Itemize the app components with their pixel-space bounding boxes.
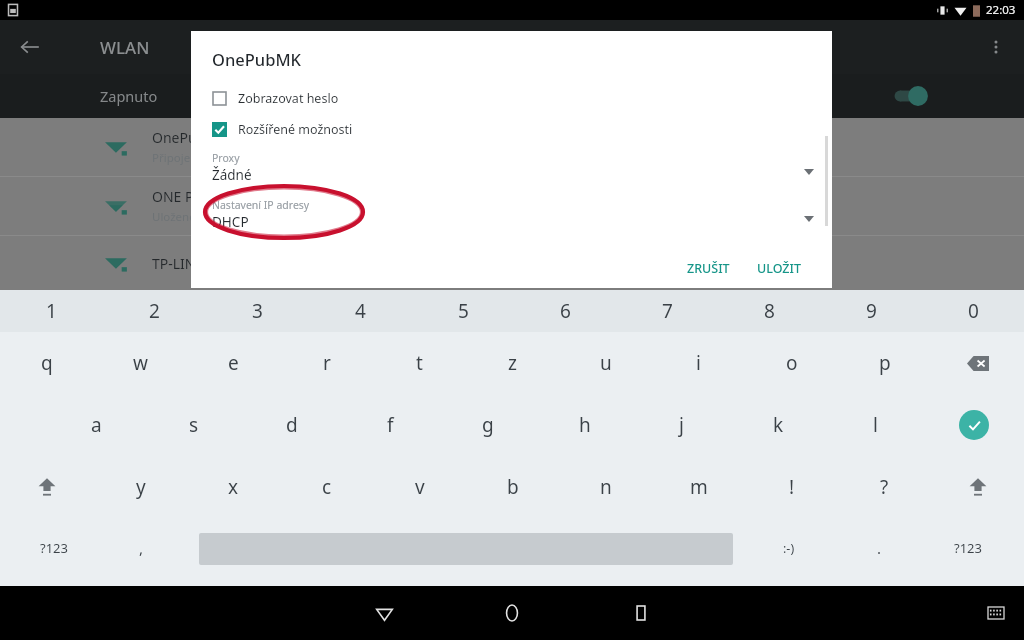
staticText: m bbox=[690, 474, 708, 500]
button[interactable]: b bbox=[466, 456, 559, 518]
staticText: b bbox=[507, 474, 519, 500]
button[interactable]: TP-LINK_D0C2 bbox=[0, 236, 1024, 290]
button[interactable]: i bbox=[652, 332, 745, 394]
staticText: . bbox=[877, 538, 882, 558]
button[interactable]: x bbox=[187, 456, 280, 518]
button[interactable]: 5 bbox=[412, 290, 514, 332]
staticText: l bbox=[873, 412, 878, 438]
button[interactable]: s bbox=[145, 394, 243, 456]
button[interactable]: l bbox=[827, 394, 924, 456]
staticText: 8 bbox=[764, 298, 775, 324]
button[interactable]: u bbox=[559, 332, 652, 394]
staticText: 4 bbox=[355, 298, 366, 324]
staticText: c bbox=[322, 474, 332, 500]
staticText: s bbox=[189, 412, 199, 438]
button[interactable]: r bbox=[280, 332, 373, 394]
button[interactable]: . bbox=[856, 523, 902, 573]
button[interactable]: 0 bbox=[922, 290, 1024, 332]
staticText: , bbox=[139, 538, 144, 558]
staticText: k bbox=[773, 412, 784, 438]
staticText: Rozšířené možnosti bbox=[238, 121, 353, 138]
staticText: u bbox=[600, 350, 612, 376]
staticText: Žádné bbox=[212, 166, 252, 184]
button[interactable]: 2 bbox=[103, 290, 206, 332]
button[interactable]: 1 bbox=[0, 290, 103, 332]
button[interactable]: e bbox=[187, 332, 280, 394]
button[interactable]: 7 bbox=[616, 290, 718, 332]
button[interactable]: ?123 bbox=[940, 523, 996, 573]
staticText: ? bbox=[880, 474, 889, 500]
button[interactable]: j bbox=[633, 394, 730, 456]
button[interactable]: ULOŽIT bbox=[748, 254, 810, 283]
staticText: r bbox=[323, 350, 331, 376]
staticText: ULOŽIT bbox=[757, 260, 801, 277]
button[interactable]: Proxy bbox=[191, 147, 832, 187]
staticText: d bbox=[286, 412, 298, 438]
staticText: :-) bbox=[783, 540, 795, 557]
button[interactable]: Shift bbox=[0, 456, 94, 518]
button[interactable]: z bbox=[466, 332, 559, 394]
button[interactable]: w bbox=[94, 332, 187, 394]
staticText: t bbox=[416, 350, 423, 376]
button[interactable]: h bbox=[536, 394, 633, 456]
button[interactable]: n bbox=[559, 456, 652, 518]
button[interactable]: OnePubMK bbox=[0, 118, 1024, 176]
staticText: x bbox=[228, 474, 239, 500]
button[interactable]: ! bbox=[745, 456, 838, 518]
button[interactable]: ? bbox=[838, 456, 931, 518]
button[interactable]: ONE PUBLIC bbox=[0, 177, 1024, 235]
button[interactable]: a bbox=[47, 394, 145, 456]
button[interactable]: ZRUŠIT bbox=[678, 254, 739, 283]
staticText: g bbox=[482, 412, 494, 438]
button[interactable]: ?123 bbox=[26, 523, 82, 573]
staticText: q bbox=[41, 350, 53, 376]
button[interactable]: 6 bbox=[514, 290, 616, 332]
staticText: 5 bbox=[458, 298, 469, 324]
button[interactable]: d bbox=[243, 394, 341, 456]
button[interactable]: 9 bbox=[820, 290, 922, 332]
button[interactable]: Backspace bbox=[931, 332, 1024, 394]
staticText: h bbox=[579, 412, 591, 438]
button[interactable]: Enter bbox=[924, 394, 1024, 456]
staticText: 1 bbox=[46, 298, 57, 324]
staticText: OnePubMK bbox=[152, 128, 227, 147]
button[interactable]: p bbox=[838, 332, 931, 394]
button[interactable]: g bbox=[439, 394, 536, 456]
button[interactable]: c bbox=[280, 456, 373, 518]
staticText: z bbox=[508, 350, 517, 376]
button[interactable]: 8 bbox=[718, 290, 820, 332]
button[interactable]: q bbox=[0, 332, 94, 394]
button[interactable]: f bbox=[341, 394, 439, 456]
button[interactable]: Shift bbox=[931, 456, 1024, 518]
button[interactable]: t bbox=[373, 332, 466, 394]
button[interactable]: Nastavení IP adresy bbox=[191, 194, 832, 234]
button[interactable]: 4 bbox=[309, 290, 412, 332]
button[interactable]: 3 bbox=[206, 290, 309, 332]
button[interactable]: :-) bbox=[766, 523, 812, 573]
staticText: w bbox=[133, 350, 148, 376]
button[interactable]: , bbox=[118, 523, 164, 573]
staticText: TP-LINK_D0C2 bbox=[152, 254, 246, 273]
button[interactable]: Zapnuto bbox=[0, 74, 1024, 118]
staticText: Připojeno bbox=[152, 150, 205, 166]
button[interactable]: Rozšířené možnosti bbox=[212, 121, 832, 138]
staticText: 7 bbox=[662, 298, 673, 324]
button[interactable]: m bbox=[652, 456, 745, 518]
button[interactable]: v bbox=[373, 456, 466, 518]
staticText: Zobrazovat heslo bbox=[238, 90, 339, 107]
button[interactable]: Zobrazovat heslo bbox=[212, 90, 832, 107]
button[interactable]: Back bbox=[361, 590, 407, 636]
button[interactable]: Switch keyboard bbox=[976, 593, 1016, 633]
button[interactable]: Recent apps bbox=[618, 590, 664, 636]
button[interactable]: More options bbox=[976, 27, 1016, 67]
staticText: v bbox=[415, 474, 425, 500]
button[interactable]: Home bbox=[489, 590, 535, 636]
button[interactable]: y bbox=[94, 456, 187, 518]
button[interactable]: k bbox=[730, 394, 827, 456]
staticText: ! bbox=[789, 474, 795, 500]
staticText: OnePubMK bbox=[212, 48, 301, 70]
button[interactable]: Back bbox=[10, 27, 50, 67]
button[interactable]: o bbox=[745, 332, 838, 394]
staticText: ?123 bbox=[40, 539, 68, 557]
